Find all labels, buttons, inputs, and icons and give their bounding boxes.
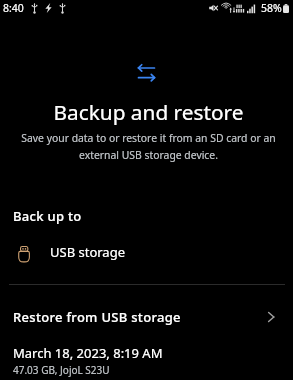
button[interactable]: USB storage bbox=[0, 236, 293, 268]
staticText: Save your data to or restore it from an … bbox=[2, 131, 293, 162]
staticText: 58% bbox=[261, 1, 282, 15]
other: Restore from USB storage bbox=[264, 310, 278, 324]
staticText: Restore from USB storage bbox=[13, 308, 181, 326]
staticText: USB storage bbox=[50, 243, 125, 261]
staticText: Backup and restore bbox=[2, 98, 293, 126]
staticText: 47.03 GB, JojoL S23U bbox=[13, 363, 110, 377]
staticText: March 18, 2023, 8:19 AM bbox=[13, 344, 163, 362]
staticText: Back up to bbox=[13, 207, 82, 225]
staticText: 8:40 bbox=[3, 1, 24, 15]
button[interactable]: Restore from USB storage bbox=[0, 293, 293, 380]
